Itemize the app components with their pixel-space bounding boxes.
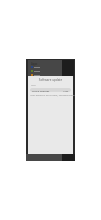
button[interactable]: Check updates [30,88,71,92]
staticText: Your device is up to date, checked today [30,93,75,96]
staticText: Now [63,89,69,92]
staticText: Apps [31,62,38,66]
staticText: Info [31,83,36,86]
staticText: Check updates [32,89,50,92]
button[interactable]: Menu item [30,70,41,72]
staticText: Software update [28,78,73,82]
button[interactable]: Menu item [30,74,41,76]
button[interactable]: Menu item [30,66,41,68]
